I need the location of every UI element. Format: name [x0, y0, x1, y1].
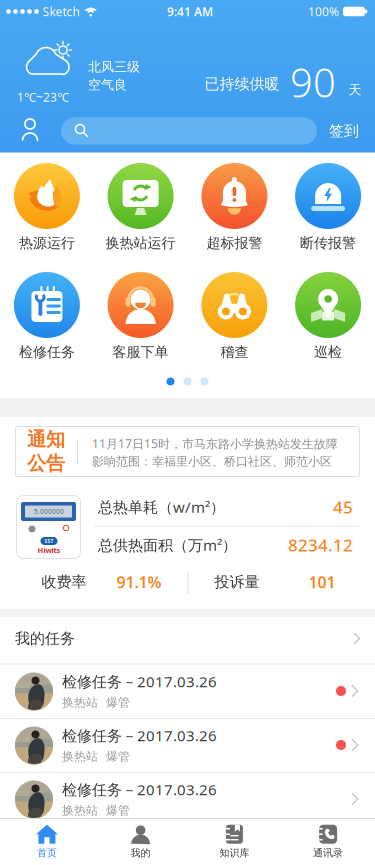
staticText: 91.1% [116, 571, 161, 593]
staticText: 首页 [37, 847, 57, 859]
button[interactable]: 我的 [101, 820, 181, 864]
staticText: 检修任务－2017.03.26 [62, 725, 217, 746]
staticText: 公告 [27, 451, 65, 475]
button[interactable]: 我的任务 [0, 617, 375, 664]
staticText: 签到 [329, 122, 359, 140]
staticText: 超标报警 [206, 234, 262, 252]
button[interactable]: 检修任务－2017.03.26 [0, 718, 375, 772]
staticText: 我的 [131, 847, 151, 859]
staticText: 8234.12 [288, 533, 353, 557]
button[interactable]: 断传报警 [282, 163, 374, 265]
staticText: 空气良 [88, 77, 127, 93]
staticText: 已持续供暖 [204, 75, 279, 93]
staticText: 客服下单 [113, 343, 169, 361]
staticText: 投诉量 [214, 573, 259, 591]
button[interactable]: 通知 [15, 426, 360, 477]
staticText: 热源运行 [19, 234, 75, 252]
staticText: 1℃~23℃ [17, 89, 69, 105]
button[interactable]: 稽查 [188, 272, 280, 374]
staticText: Sketch [42, 3, 79, 20]
staticText: 巡检 [314, 343, 342, 361]
button[interactable]: 巡检 [282, 272, 374, 374]
staticText: 换热站 爆管 [62, 695, 130, 710]
staticText: 换热站运行 [106, 234, 176, 252]
staticText: 影响范围：幸福里小区、桥口社区、师范小区 [92, 454, 332, 469]
staticText: 我的任务 [15, 629, 75, 648]
button[interactable]: 签到 [319, 113, 369, 149]
button[interactable]: 搜索 [61, 117, 317, 144]
staticText: SST [44, 538, 53, 544]
button[interactable]: 知识库 [194, 820, 274, 864]
button[interactable]: 通讯录 [288, 820, 368, 864]
staticText: 5.000000 [34, 507, 64, 516]
staticText: 断传报警 [300, 234, 356, 252]
button[interactable]: 用户 [12, 112, 48, 148]
staticText: Hiwits [37, 545, 60, 555]
staticText: 检修任务－2017.03.26 [62, 671, 217, 692]
button[interactable]: 热源运行 [1, 163, 93, 265]
staticText: 换热站 爆管 [62, 749, 130, 764]
staticText: 45 [333, 495, 353, 519]
button[interactable]: 检修任务 [1, 272, 93, 374]
staticText: 9:41 AM [167, 3, 213, 20]
staticText: 通讯录 [313, 847, 343, 859]
staticText: 100% [308, 3, 339, 20]
button[interactable]: 首页 [7, 820, 87, 864]
staticText: 北风三级 [88, 59, 140, 75]
staticText: 收费率 [41, 573, 86, 591]
staticText: 总供热面积（万m²） [98, 535, 237, 555]
staticText: 知识库 [219, 847, 249, 859]
staticText: 通知 [27, 428, 65, 451]
staticText: 总热单耗（w/m²） [98, 497, 225, 517]
staticText: 稽查 [220, 343, 248, 361]
staticText: 检修任务－2017.03.26 [62, 779, 217, 800]
button[interactable]: 超标报警 [188, 163, 280, 265]
button[interactable]: 客服下单 [95, 272, 187, 374]
staticText: 11月17日15时，市马东路小学换热站发生故障 [92, 435, 338, 452]
staticText: 90 [290, 55, 336, 109]
button[interactable]: 检修任务－2017.03.26 [0, 772, 375, 826]
staticText: 天 [348, 82, 361, 98]
staticText: 101 [308, 571, 335, 593]
staticText: 检修任务 [19, 343, 75, 361]
staticText: 换热站 爆管 [62, 803, 130, 818]
button[interactable]: 换热站运行 [95, 163, 187, 265]
button[interactable]: 检修任务－2017.03.26 [0, 664, 375, 718]
